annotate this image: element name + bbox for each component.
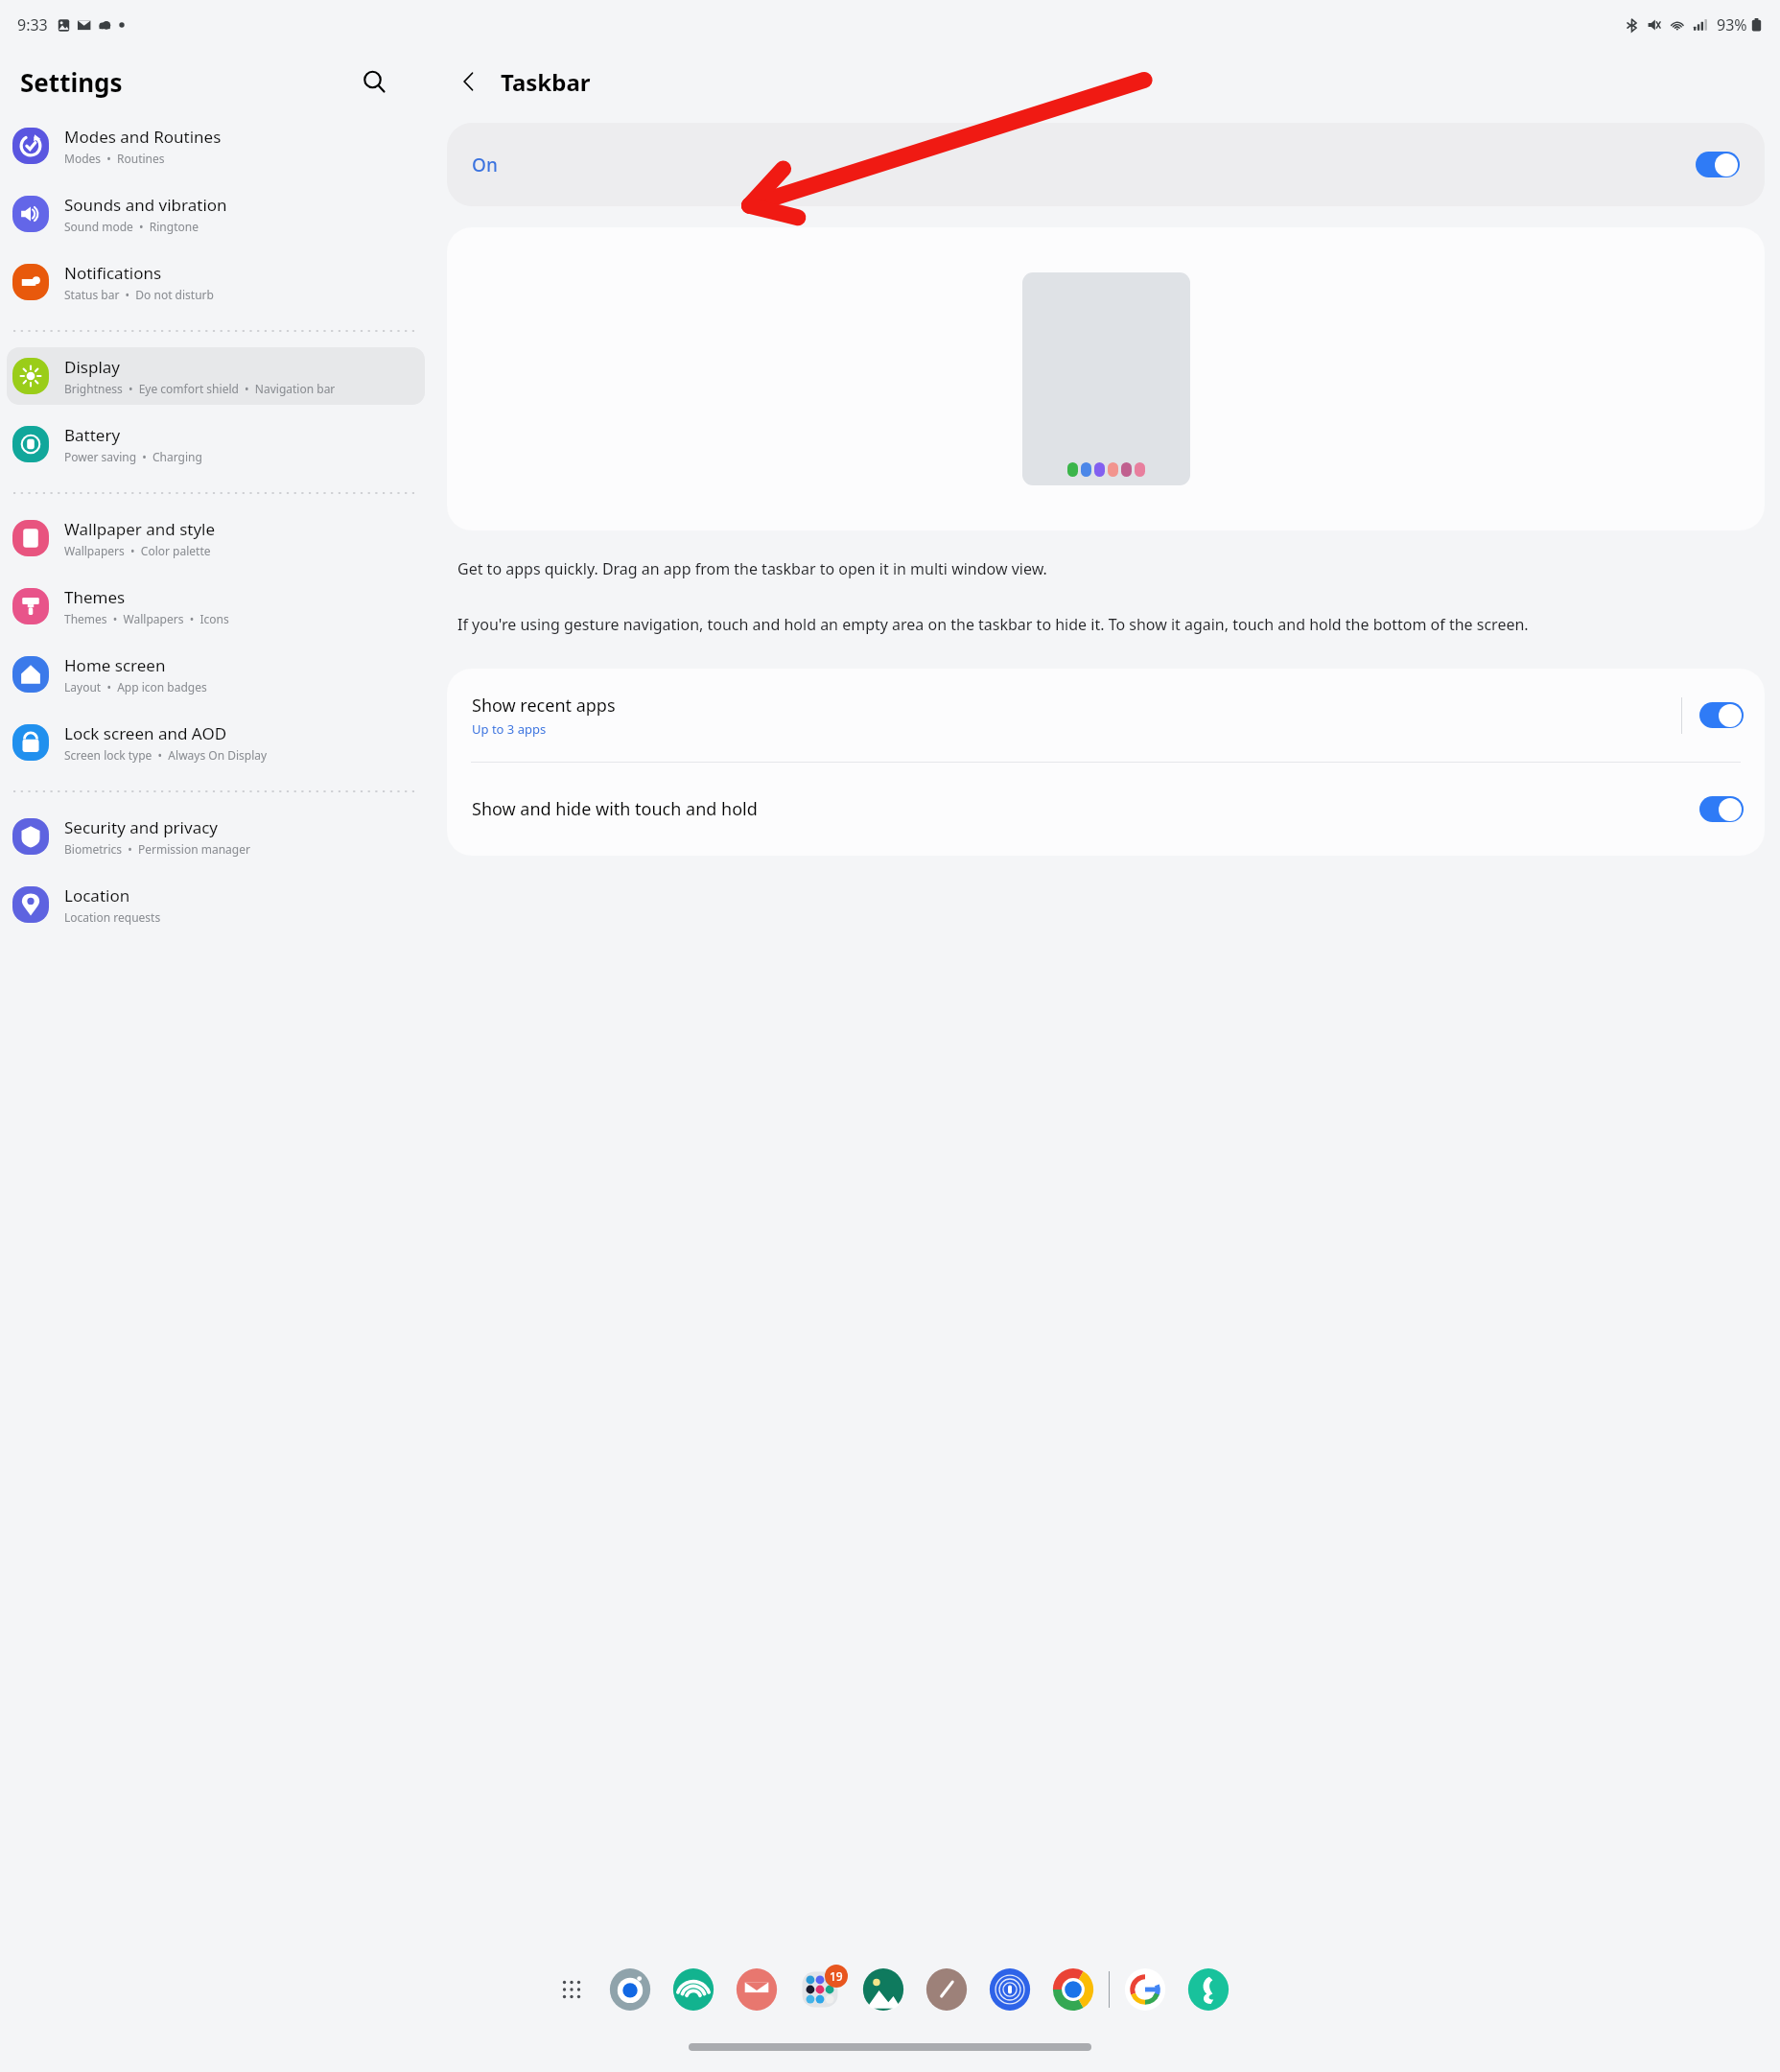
button[interactable]: Spotify [671,1967,715,2012]
button[interactable]: Show and hide with touch and hold [447,763,1765,856]
staticText: Get to apps quickly. Drag an app from th… [457,552,1047,580]
button[interactable]: On [447,123,1765,206]
button[interactable]: Lock screen and AOD [7,714,425,771]
staticText: Themes [64,586,126,608]
button[interactable]: Folder [798,1967,842,2012]
button[interactable]: Duolingo [1186,1967,1230,2012]
button[interactable]: Home screen [7,646,425,703]
staticText: Layout • App icon badges [64,679,207,695]
button[interactable]: Battery [7,415,425,473]
staticText: Status bar • Do not disturb [64,287,214,302]
staticText: Battery [64,424,121,446]
button[interactable]: Notifications [7,253,425,311]
staticText: Lock screen and AOD [64,722,227,744]
staticText: Taskbar [501,66,591,98]
button[interactable]: Gallery [861,1967,905,2012]
button[interactable]: Toggle on [1696,152,1740,177]
staticText: Power saving • Charging [64,449,202,464]
button[interactable]: Security and privacy [7,808,425,865]
staticText: Wallpaper and style [64,518,216,540]
button[interactable]: Show recent apps [447,669,1765,762]
staticText: Location [64,884,130,906]
staticText: 19 [830,1968,843,1984]
staticText: Notifications [64,262,162,284]
staticText: Display [64,356,120,378]
button[interactable]: Themes [7,577,425,635]
button[interactable]: Notes [925,1967,969,2012]
button[interactable]: Display [7,347,425,405]
button[interactable]: Sounds and vibration [7,185,425,243]
staticText: If you're using gesture navigation, touc… [457,607,1529,636]
button[interactable]: Back [447,59,491,104]
staticText: Sound mode • Ringtone [64,219,199,234]
button[interactable]: Samsung Internet [608,1967,652,2012]
button[interactable]: 1Password [988,1967,1032,2012]
staticText: Modes and Routines [64,126,222,148]
staticText: Themes • Wallpapers • Icons [64,611,229,626]
button[interactable]: Wallpaper and style [7,509,425,567]
staticText: Home screen [64,654,166,676]
staticText: 93% [1717,14,1747,35]
button[interactable]: Gmail [735,1967,779,2012]
staticText: Screen lock type • Always On Display [64,747,268,763]
staticText: Sounds and vibration [64,194,227,216]
staticText: Show recent apps [472,694,616,718]
staticText: Location requests [64,909,161,925]
button[interactable]: Search [353,60,395,103]
staticText: Wallpapers • Color palette [64,543,211,558]
staticText: Up to 3 apps [472,720,547,738]
staticText: Biometrics • Permission manager [64,841,250,857]
staticText: 9:33 [17,14,48,35]
staticText: Modes • Routines [64,151,165,166]
staticText: Brightness • Eye comfort shield • Naviga… [64,381,336,396]
staticText: Security and privacy [64,816,219,838]
staticText: On [472,153,498,177]
button[interactable]: Apps [550,1968,593,2011]
button[interactable]: Location [7,876,425,933]
staticText: Show and hide with touch and hold [472,797,1699,821]
button[interactable]: Modes and Routines [7,117,425,175]
button[interactable]: Google [1123,1967,1167,2012]
staticText: Settings [20,65,123,99]
button[interactable]: Toggle on [1699,796,1744,822]
button[interactable]: Chrome [1051,1967,1095,2012]
button[interactable]: Toggle on [1699,702,1744,728]
